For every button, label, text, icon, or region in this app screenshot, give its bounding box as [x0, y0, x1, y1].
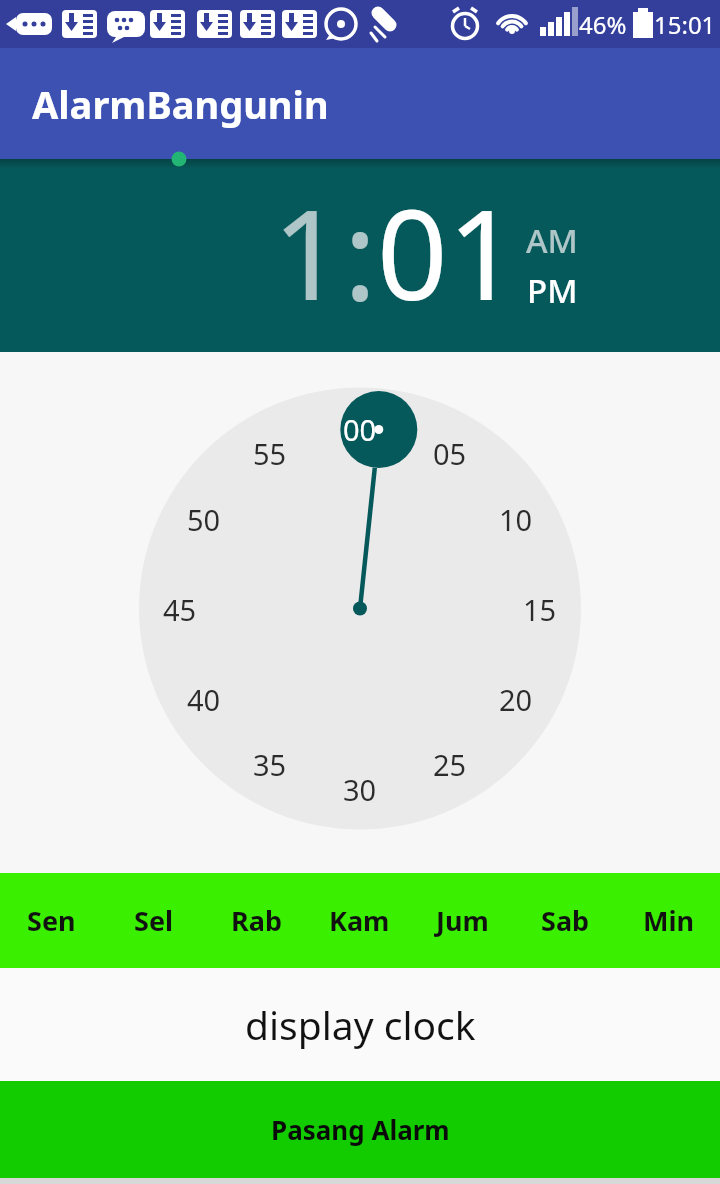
staticText: 35	[253, 745, 287, 784]
staticText: 15:01	[654, 8, 716, 41]
button[interactable]: 00	[330, 407, 390, 451]
staticText: 25	[433, 745, 467, 784]
button[interactable]: Sab	[514, 873, 617, 968]
button[interactable]: Kam	[308, 873, 411, 968]
staticText: Jum	[436, 902, 489, 939]
button[interactable]: 35	[240, 742, 300, 786]
staticText: Pasang Alarm	[271, 1112, 450, 1147]
staticText: 1:01	[272, 167, 519, 317]
staticText: PM	[527, 268, 578, 308]
button[interactable]: 55	[240, 431, 300, 475]
staticText: 40	[187, 680, 221, 719]
button[interactable]: Jum	[411, 873, 514, 968]
staticText: 05	[433, 434, 467, 473]
staticText: Sel	[134, 902, 174, 939]
button[interactable]: 15	[510, 587, 570, 631]
staticText: 50	[187, 500, 221, 539]
button[interactable]: 05	[420, 431, 480, 475]
button[interactable]: AM	[512, 218, 592, 258]
button[interactable]: 40	[174, 677, 234, 721]
button[interactable]: display clock	[0, 968, 720, 1081]
staticText: Sab	[541, 902, 590, 939]
staticText: 10	[499, 500, 533, 539]
staticText: Rab	[231, 902, 282, 939]
staticText: 15	[523, 590, 557, 629]
button[interactable]: Sen	[0, 873, 102, 968]
staticText: 55	[253, 434, 287, 473]
button[interactable]: 25	[420, 742, 480, 786]
button[interactable]: Sel	[102, 873, 205, 968]
button[interactable]: Rab	[205, 873, 308, 968]
button[interactable]: PM	[512, 268, 592, 308]
button[interactable]: 20	[486, 677, 546, 721]
button[interactable]: 10	[486, 497, 546, 541]
button[interactable]: 45	[150, 587, 210, 631]
staticText: 00	[343, 410, 377, 449]
staticText: AlarmBangunin	[32, 78, 329, 130]
staticText: Kam	[329, 902, 390, 939]
button[interactable]: 30	[330, 767, 390, 811]
button[interactable]: 50	[174, 497, 234, 541]
button[interactable]: AlarmBangunin	[0, 48, 720, 159]
staticText: 45	[163, 590, 197, 629]
button[interactable]: Pasang Alarm	[0, 1081, 720, 1178]
staticText: AM	[526, 218, 578, 258]
staticText: 30	[343, 770, 377, 809]
button[interactable]: Min	[617, 873, 720, 968]
staticText: 46%	[579, 8, 627, 41]
staticText: Sen	[27, 902, 76, 939]
staticText: Min	[643, 902, 695, 939]
staticText: display clock	[245, 998, 476, 1051]
staticText: 20	[499, 680, 533, 719]
